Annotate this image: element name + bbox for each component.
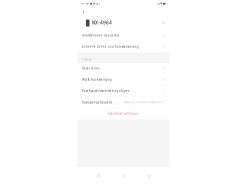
staticText: NX-4964 — [92, 20, 112, 26]
staticText: Ausrüstungs-Upgrade — [82, 101, 113, 104]
staticText: FAQ & Rückmeldung — [82, 78, 112, 81]
staticText: Sonstiges — [82, 58, 92, 61]
staticText: Das Gerät entfernen — [108, 112, 138, 116]
staticText: 14:48 — [81, 2, 89, 5]
staticText: Informationen des Geräts — [82, 34, 119, 37]
staticText: Gerät teilen — [82, 67, 100, 70]
button[interactable]: Back — [145, 172, 153, 180]
button[interactable]: Back — [81, 8, 87, 15]
button[interactable]: Ausrüstungs-Upgrade — [77, 97, 169, 108]
staticText: Schnelle Szene und Automatisierung — [82, 45, 139, 48]
button[interactable]: FAQ & Rückmeldung — [77, 74, 169, 86]
button[interactable]: Recent apps — [94, 172, 102, 180]
button[interactable]: Das Gerät entfernen — [77, 108, 169, 119]
button[interactable]: Schnelle Szene und Automatisierung — [77, 41, 169, 53]
staticText: Aktuelle Version installiert — [123, 101, 161, 104]
button[interactable]: Zum Startbildschirm hinzufügen — [77, 86, 169, 97]
staticText: Zum Startbildschirm hinzufügen — [82, 89, 130, 93]
button[interactable]: Gerät teilen — [77, 63, 169, 74]
button[interactable]: Rename device — [161, 20, 166, 26]
button[interactable]: Home — [119, 172, 128, 180]
button[interactable]: Informationen des Geräts — [77, 30, 169, 41]
